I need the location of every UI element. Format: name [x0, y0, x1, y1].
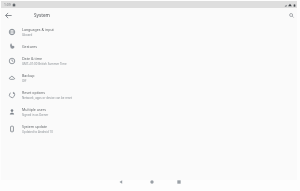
button[interactable]: Recent apps [172, 175, 185, 188]
staticText: System update [22, 124, 48, 129]
staticText: Date & time [22, 56, 43, 61]
staticText: Updated to Android 10 [22, 130, 53, 134]
staticText: Signed in as Owner [22, 113, 49, 117]
staticText: Off [22, 79, 27, 83]
staticText: Gboard [22, 33, 33, 37]
staticText: System [34, 12, 50, 18]
button[interactable]: System update [1, 120, 297, 137]
button[interactable]: Gestures [1, 40, 297, 52]
staticText: GMT+01:00 British Summer Time [22, 62, 67, 66]
staticText: Network, apps or device can be reset [22, 96, 73, 100]
button[interactable]: Backup [1, 69, 297, 86]
button[interactable]: Back [114, 175, 127, 188]
staticText: Backup [22, 73, 35, 78]
staticText: Multiple users [22, 107, 46, 112]
button[interactable]: Home [145, 175, 158, 188]
button[interactable]: Multiple users [1, 103, 297, 120]
staticText: Languages & input [22, 27, 54, 32]
button[interactable]: Languages & input [1, 23, 297, 40]
button[interactable]: Back [2, 9, 15, 22]
button[interactable]: Search [286, 10, 296, 20]
staticText: Gestures [22, 44, 38, 49]
button[interactable]: Reset options [1, 86, 297, 103]
staticText: Reset options [22, 90, 45, 95]
staticText: 1:09 [4, 2, 11, 7]
button[interactable]: Date & time [1, 52, 297, 69]
